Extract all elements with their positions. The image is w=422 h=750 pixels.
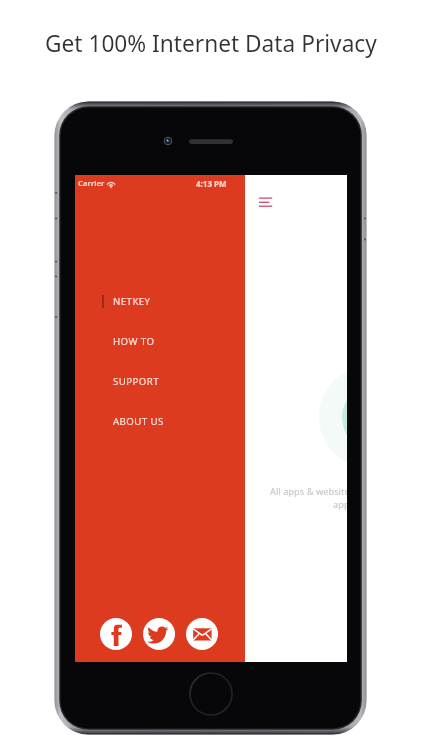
button[interactable]: ABOUT US [75, 401, 245, 441]
staticText: All apps & websites will work [270, 485, 347, 498]
button[interactable]: Facebook [100, 618, 132, 650]
button[interactable]: SUPPORT [75, 361, 245, 401]
staticText: app [333, 498, 347, 511]
staticText: HOW TO [113, 335, 155, 348]
button[interactable]: Email [186, 618, 218, 650]
button[interactable]: NETKEY [75, 281, 245, 321]
staticText: SUPPORT [113, 375, 160, 388]
staticText: ABOUT US [113, 415, 164, 428]
staticText: Carrier [78, 178, 105, 189]
staticText: Get 100% Internet Data Privacy [45, 28, 377, 59]
button[interactable]: HOW TO [75, 321, 245, 361]
button[interactable]: Twitter [143, 618, 175, 650]
staticText: 4:13 PM [196, 178, 227, 189]
staticText: NETKEY [113, 295, 151, 308]
button[interactable]: Open menu [256, 192, 278, 210]
